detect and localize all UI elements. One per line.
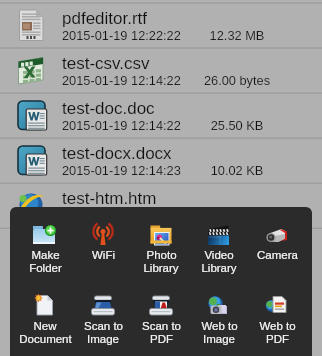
staticText: Document <box>19 333 72 346</box>
staticText: Web to <box>201 320 238 333</box>
staticText: Scan to <box>142 320 181 333</box>
staticText: test-htm.htm <box>62 189 157 208</box>
staticText: 10.02 KB <box>193 163 281 177</box>
staticText: 25.50 KB <box>193 118 281 132</box>
staticText: Web to <box>259 320 296 333</box>
staticText: PDF <box>150 333 173 346</box>
staticText: WiFi <box>92 249 115 262</box>
staticText: 2015-01-19 12:22:22 <box>62 28 181 42</box>
button[interactable]: Photo Library <box>132 223 190 275</box>
button[interactable]: Camera <box>248 223 306 262</box>
staticText: 2015-01-19 12:14:23 <box>62 163 181 177</box>
button[interactable]: Scan to Image <box>74 294 132 346</box>
staticText: pdfeditor.rtf <box>62 9 148 28</box>
staticText: test-docx.docx <box>62 144 172 163</box>
button[interactable]: test-docx.docx <box>0 139 322 183</box>
button[interactable]: test-htm.htm <box>0 184 322 228</box>
staticText: 2015-01-19 12:14:22 <box>62 73 181 87</box>
staticText: New <box>33 320 57 333</box>
staticText: Image <box>203 333 235 346</box>
button[interactable]: New Document <box>16 294 74 346</box>
staticText: test-doc.doc <box>62 99 155 118</box>
button[interactable]: WiFi <box>74 223 132 262</box>
staticText: 2015-01-19 12:14:22 <box>62 118 181 132</box>
button[interactable]: Scan to PDF <box>132 294 190 346</box>
staticText: Camera <box>257 249 298 262</box>
button[interactable]: Video Library <box>190 223 248 275</box>
button[interactable]: test-doc.doc <box>0 94 322 138</box>
staticText: Video <box>204 249 234 262</box>
button[interactable]: test-csv.csv <box>0 49 322 93</box>
button[interactable]: Make Folder <box>16 223 74 275</box>
staticText: test-csv.csv <box>62 54 150 73</box>
button[interactable]: pdfeditor.rtf <box>0 4 322 48</box>
staticText: 26.00 bytes <box>193 73 281 87</box>
button[interactable]: Web to PDF <box>248 294 306 346</box>
staticText: Make <box>31 249 60 262</box>
staticText: Folder <box>29 262 62 275</box>
staticText: 12.32 MB <box>193 28 281 42</box>
staticText: Scan to <box>84 320 123 333</box>
staticText: Image <box>87 333 119 346</box>
staticText: Library <box>143 262 179 275</box>
staticText: Library <box>201 262 237 275</box>
button[interactable]: Web to Image <box>190 294 248 346</box>
staticText: Photo <box>146 249 177 262</box>
staticText: PDF <box>266 333 289 346</box>
